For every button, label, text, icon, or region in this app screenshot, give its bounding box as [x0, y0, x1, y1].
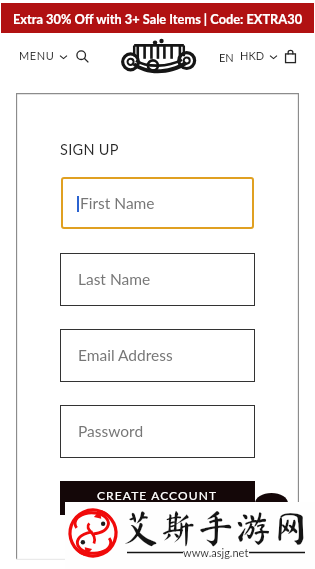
staticText: Email Address: [78, 346, 173, 365]
button[interactable]: First Name: [61, 177, 254, 229]
staticText: www.asjg.net: [183, 546, 249, 559]
button[interactable]: CREATE ACCOUNT: [60, 481, 255, 515]
staticText: Password: [78, 422, 144, 441]
staticText: SIGN UP: [60, 141, 119, 158]
staticText: Extra 30% Off with 3+ Sale Items | Code:…: [13, 11, 303, 26]
button[interactable]: Password: [60, 405, 255, 458]
staticText: MENU: [19, 49, 55, 62]
button[interactable]: HKD: [240, 49, 277, 62]
staticText: HKD: [240, 49, 265, 62]
staticText: First Name: [80, 194, 155, 213]
staticText: CREATE ACCOUNT: [97, 488, 218, 502]
button[interactable]: EN: [219, 51, 234, 64]
button[interactable]: Email Address: [60, 329, 255, 382]
button[interactable]: MENU: [19, 49, 67, 62]
button[interactable]: Extra 30% Off with 3+ Sale Items | Code:…: [1, 3, 314, 33]
button[interactable]: Last Name: [60, 253, 255, 306]
staticText: 艾斯手游网: [122, 509, 310, 547]
button[interactable]: Search: [75, 49, 90, 64]
button[interactable]: Shopping bag: [282, 48, 298, 64]
staticText: Last Name: [78, 270, 151, 289]
